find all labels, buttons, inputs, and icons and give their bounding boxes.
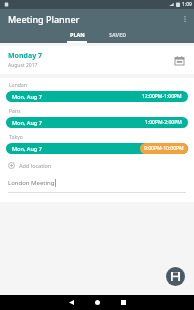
button[interactable]: Add location (0, 159, 194, 172)
staticText: Add location (19, 162, 52, 169)
staticText: Mon, Aug 7 (12, 145, 42, 152)
button[interactable]: Mon, Aug 7 (6, 91, 188, 102)
staticText: 1:00PM-2:00PM (145, 119, 182, 126)
button[interactable]: More options (176, 10, 194, 28)
staticText: Paris (9, 108, 21, 115)
staticText: Meeting Planner (8, 13, 80, 25)
staticText: London (9, 82, 27, 89)
staticText: 12:00PM-1:00PM (142, 93, 182, 100)
staticText: 1:09 (182, 1, 192, 8)
button[interactable]: Mon, Aug 7 (6, 143, 188, 154)
staticText: August 2017 (8, 62, 38, 69)
button[interactable]: Recents (110, 295, 136, 310)
staticText: Tokyo (9, 134, 23, 141)
button[interactable]: Monday 7 (0, 46, 194, 74)
staticText: 9:00PM-10:00PM (144, 145, 184, 152)
button[interactable]: SAVED (105, 29, 131, 38)
button[interactable]: Back (58, 295, 84, 310)
button[interactable]: PLAN (63, 29, 91, 43)
button[interactable]: Home (84, 295, 110, 310)
staticText: London Meeting (8, 179, 55, 187)
staticText: SAVED (109, 31, 127, 38)
staticText: Monday 7 (8, 51, 42, 61)
staticText: Mon, Aug 7 (12, 119, 42, 126)
button[interactable]: Pick date (172, 53, 186, 67)
staticText: PLAN (70, 31, 85, 38)
button[interactable]: Mon, Aug 7 (6, 117, 188, 128)
button[interactable]: Save (166, 267, 185, 286)
staticText: Mon, Aug 7 (12, 93, 42, 100)
